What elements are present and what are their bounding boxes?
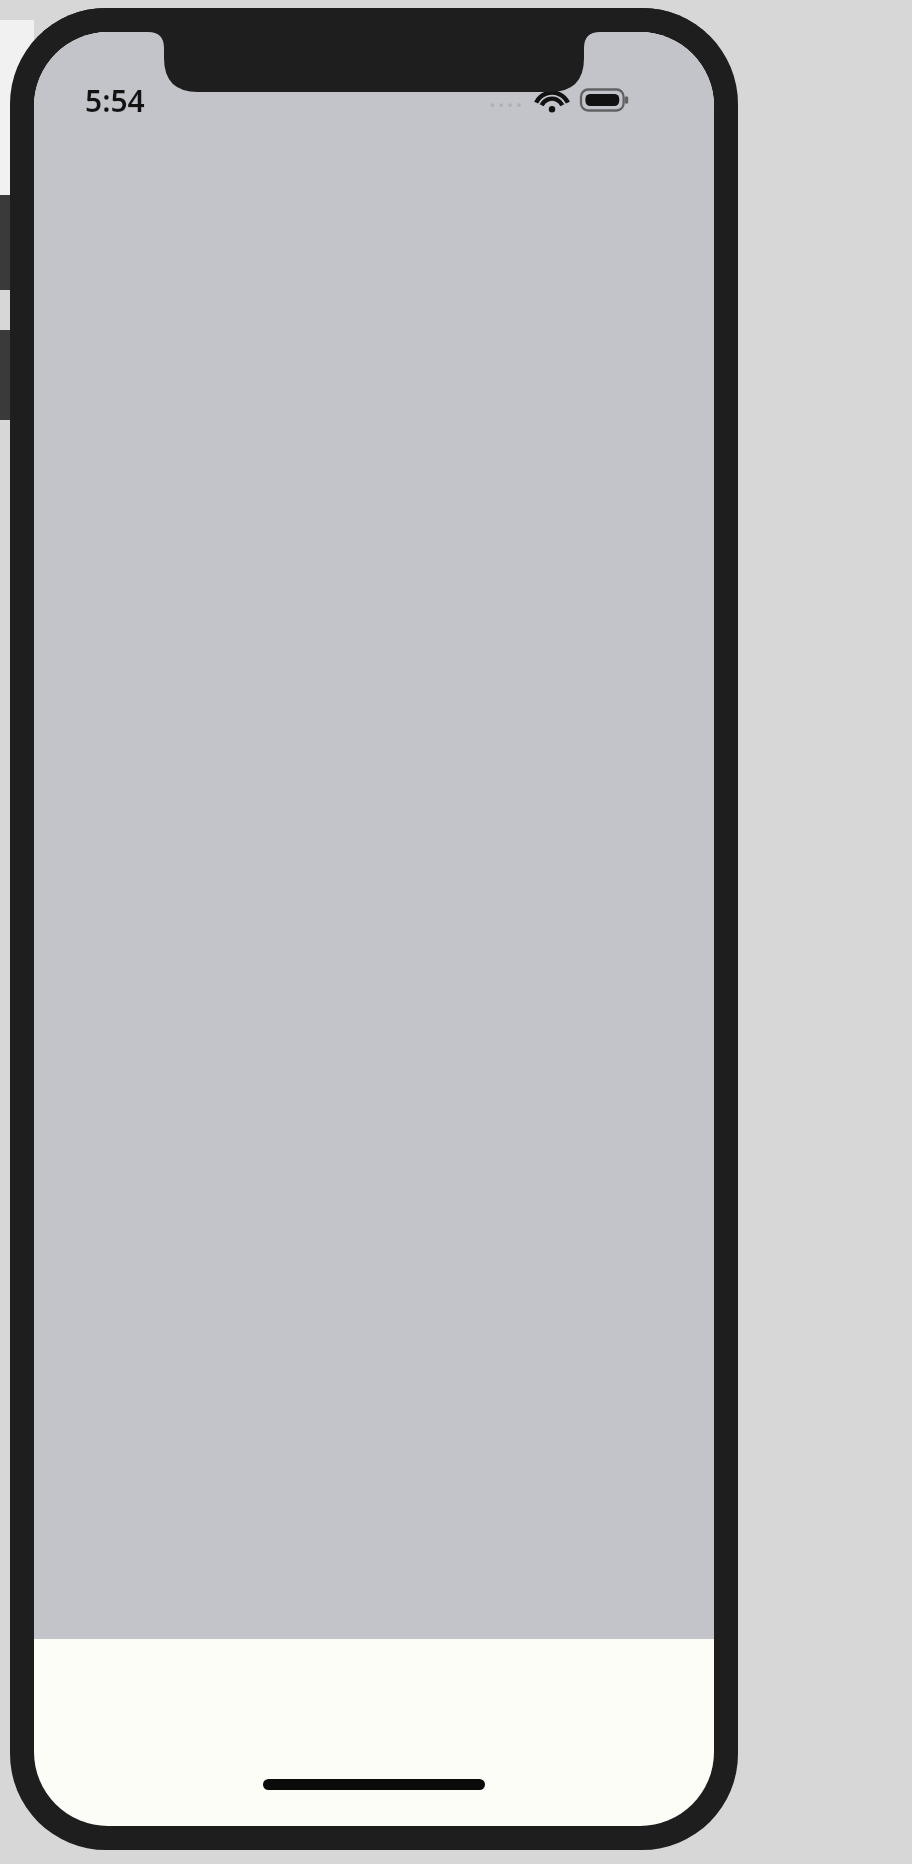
button[interactable]: Home indicator	[263, 1779, 485, 1790]
button[interactable]	[34, 32, 714, 1639]
staticText: 5:54	[85, 80, 145, 121]
